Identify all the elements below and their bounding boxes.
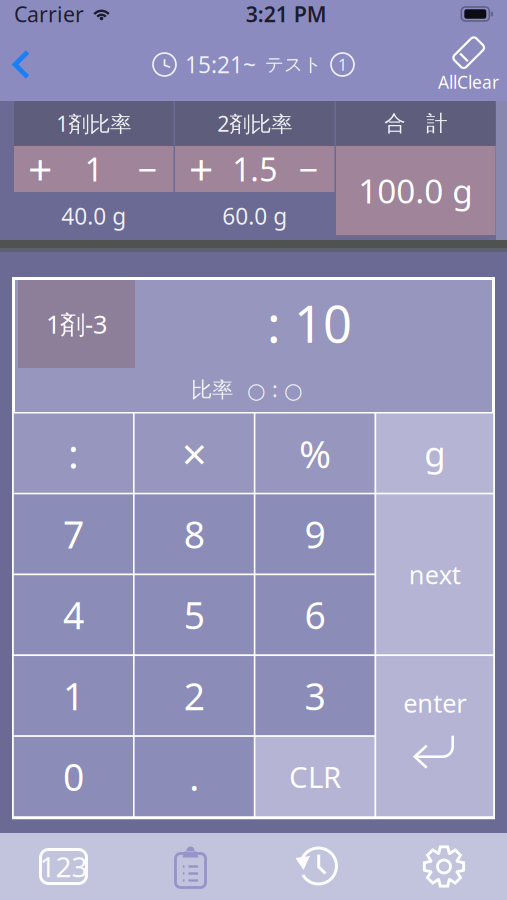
staticText: 2 <box>184 671 205 720</box>
button[interactable]: Back <box>0 28 47 101</box>
staticText: 123 <box>39 848 87 885</box>
button[interactable]: next <box>376 494 493 655</box>
staticText: 合 計 <box>384 110 447 137</box>
button[interactable]: Keypad <box>0 833 127 900</box>
button[interactable]: 2 <box>135 656 254 735</box>
button[interactable]: Records <box>127 833 254 900</box>
staticText: 100.0 g <box>358 168 473 213</box>
staticText: : <box>68 427 79 480</box>
button[interactable]: + <box>14 146 66 192</box>
button[interactable]: : <box>14 413 133 493</box>
button[interactable]: 8 <box>135 494 254 574</box>
button[interactable]: 6 <box>255 575 375 654</box>
staticText: − <box>298 146 318 192</box>
button[interactable]: − <box>121 146 173 192</box>
button[interactable]: 9 <box>255 494 375 574</box>
staticText: 60.0 g <box>222 201 287 231</box>
button[interactable]: 5 <box>135 575 254 654</box>
staticText: + <box>28 141 52 197</box>
button[interactable]: × <box>135 413 254 493</box>
staticText: Carrier <box>14 0 84 28</box>
staticText: CLR <box>289 757 341 796</box>
button[interactable]: % <box>255 413 375 493</box>
button[interactable]: History <box>254 833 381 900</box>
staticText: 3 <box>305 671 326 720</box>
button[interactable]: Settings <box>381 833 507 900</box>
button[interactable]: AllClear <box>430 28 507 101</box>
staticText: 1 <box>85 148 103 190</box>
staticText: . <box>189 752 199 801</box>
staticText: 0 <box>63 752 84 801</box>
staticText: next <box>409 558 461 591</box>
staticText: 1 <box>338 54 347 75</box>
button[interactable]: CLR <box>255 737 375 816</box>
staticText: 3:21 PM <box>246 0 327 28</box>
staticText: 2剤比率 <box>217 109 292 138</box>
button[interactable]: − <box>282 146 334 192</box>
button[interactable]: 0 <box>14 737 133 816</box>
staticText: 9 <box>305 509 326 559</box>
staticText: 8 <box>184 509 205 559</box>
staticText: + <box>189 141 213 197</box>
button[interactable]: 4 <box>14 575 133 654</box>
staticText: % <box>299 427 331 479</box>
staticText: 比率 ○ : ○ <box>191 375 303 403</box>
staticText: 7 <box>63 509 84 559</box>
staticText: 1剤-3 <box>46 307 107 341</box>
staticText: 15:21~ <box>185 49 256 79</box>
staticText: 5 <box>184 590 205 640</box>
staticText: AllClear <box>438 70 499 93</box>
staticText: 40.0 g <box>61 201 126 231</box>
staticText: − <box>137 146 157 192</box>
staticText: enter <box>403 686 466 720</box>
staticText: 1 <box>63 671 84 720</box>
button[interactable]: 7 <box>14 494 133 574</box>
staticText: g <box>424 430 445 476</box>
staticText: : 10 <box>267 289 352 357</box>
staticText: × <box>182 424 207 482</box>
staticText: 4 <box>63 590 84 640</box>
button[interactable]: 3 <box>255 656 375 735</box>
button[interactable]: g <box>376 413 493 493</box>
staticText: テスト <box>265 53 322 76</box>
button[interactable]: enter <box>376 656 493 816</box>
button[interactable]: . <box>135 737 254 816</box>
staticText: 1.5 <box>232 148 277 190</box>
button[interactable]: 1 <box>14 656 133 735</box>
staticText: 6 <box>305 590 326 640</box>
staticText: 1剤比率 <box>56 109 131 138</box>
button[interactable]: + <box>175 146 227 192</box>
